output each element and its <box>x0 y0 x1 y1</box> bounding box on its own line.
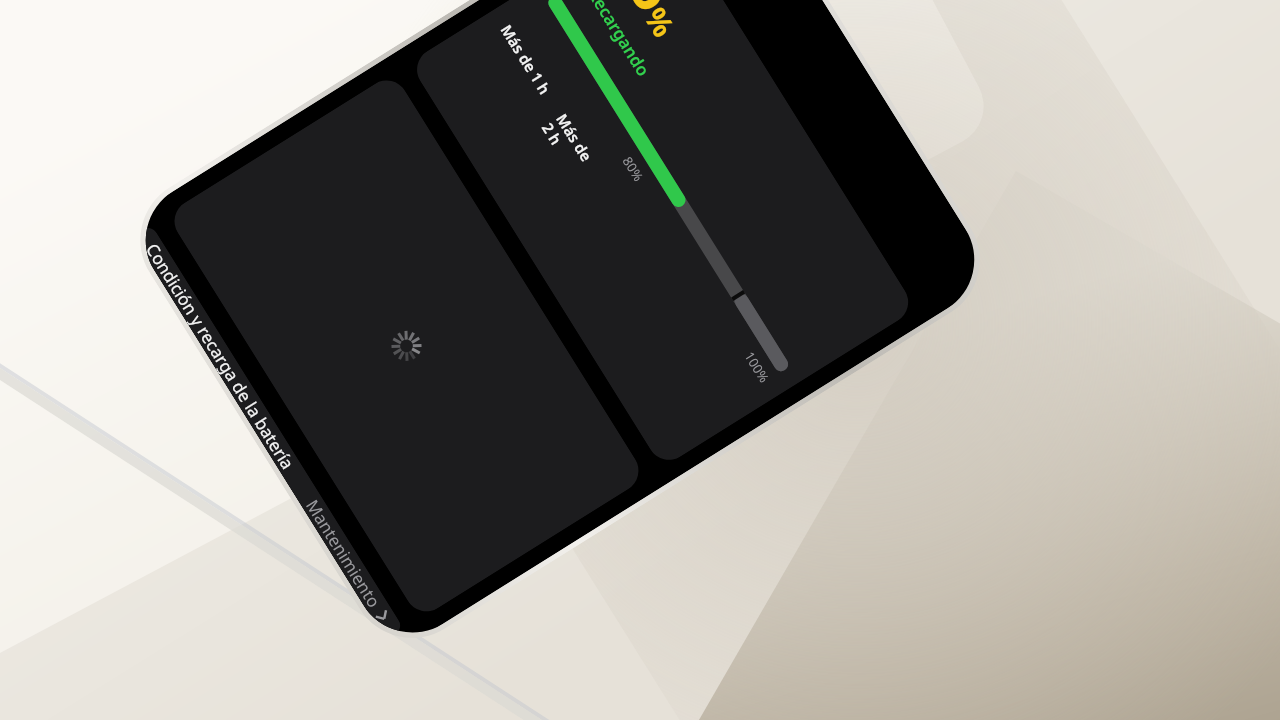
staticText: 100% <box>740 348 774 387</box>
button[interactable]: Condición y recarga de la batería <box>132 224 404 641</box>
staticText: Condición y recarga de la batería <box>142 239 299 473</box>
staticText: Mantenimiento <box>302 495 386 611</box>
staticText: Más de 2 h <box>537 110 597 175</box>
staticText: % <box>635 0 685 45</box>
button[interactable]: Estado de la batería, 56 por ciento, rec… <box>409 0 916 468</box>
staticText: Recargando <box>583 0 655 81</box>
staticText: 80% <box>619 153 648 185</box>
staticText: 56 <box>596 0 695 24</box>
staticText: Más de 1 h <box>496 21 555 98</box>
button[interactable]: Gráfico de uso de batería <box>166 72 647 620</box>
